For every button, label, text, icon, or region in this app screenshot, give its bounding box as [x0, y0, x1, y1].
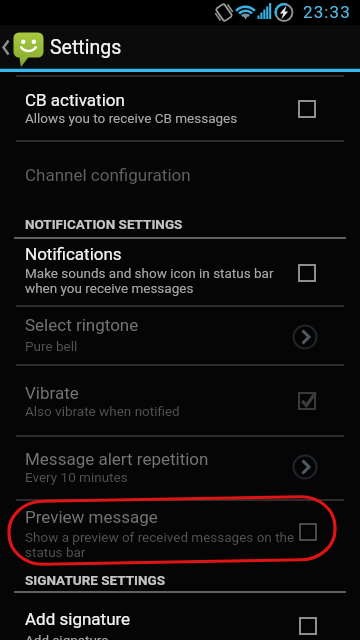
button[interactable]: [0, 25, 360, 69]
staticText: 23:33: [303, 2, 351, 22]
staticText: Pure bell: [25, 338, 78, 354]
button[interactable]: Notifications: [0, 240, 360, 305]
staticText: Select ringtone: [25, 315, 139, 335]
button[interactable]: Message alert repetition: [0, 437, 360, 492]
staticText: Settings: [50, 36, 122, 59]
staticText: Notifications: [25, 244, 122, 264]
staticText: Preview message: [25, 507, 158, 527]
button[interactable]: Add signature: [0, 593, 360, 640]
button[interactable]: CB activation: [0, 77, 360, 140]
staticText: Also vibrate when notified: [25, 403, 180, 419]
staticText: Message alert repetition: [25, 449, 209, 469]
staticText: Allows you to receive CB messages: [25, 110, 238, 126]
staticText: NOTIFICATION SETTINGS: [25, 216, 183, 232]
staticText: status bar: [25, 544, 86, 560]
staticText: Show a preview of received messages on t…: [25, 529, 295, 545]
button[interactable]: Select ringtone: [0, 305, 360, 364]
staticText: Channel configuration: [25, 165, 191, 185]
staticText: Add signature: [25, 632, 109, 640]
button[interactable]: Vibrate: [0, 366, 360, 435]
staticText: CB activation: [25, 90, 125, 110]
staticText: Add signature: [25, 609, 131, 629]
staticText: when you receive messages: [25, 280, 194, 296]
staticText: Vibrate: [25, 383, 79, 403]
button[interactable]: Channel configuration: [0, 142, 360, 200]
staticText: Every 10 minutes: [25, 469, 128, 485]
button[interactable]: Preview message: [0, 501, 360, 569]
staticText: Make sounds and show icon in status bar: [25, 265, 274, 281]
staticText: SIGNATURE SETTINGS: [25, 572, 166, 588]
